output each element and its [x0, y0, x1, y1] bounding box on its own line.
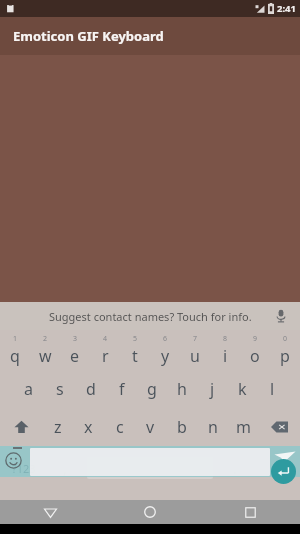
- staticText: e: [70, 345, 80, 367]
- staticText: v: [146, 416, 155, 438]
- staticText: 5: [133, 334, 138, 344]
- button[interactable]: z: [42, 408, 73, 446]
- staticText: 1: [13, 334, 18, 344]
- button[interactable]: Symbols: [0, 446, 48, 490]
- staticText: r: [102, 345, 109, 367]
- staticText: Suggest contact names? Touch for info.: [49, 309, 252, 324]
- button[interactable]: s: [44, 370, 75, 408]
- staticText: 2:41: [277, 2, 296, 15]
- button[interactable]: m: [228, 408, 259, 446]
- button[interactable]: Voice input: [270, 305, 292, 327]
- button[interactable]: 6: [150, 330, 180, 370]
- button[interactable]: n: [197, 408, 228, 446]
- staticText: p: [280, 345, 290, 367]
- button[interactable]: 7: [180, 330, 210, 370]
- button[interactable]: 3: [60, 330, 90, 370]
- staticText: 3: [73, 334, 78, 344]
- staticText: w: [39, 345, 52, 367]
- button[interactable]: Emoticon GIF Keyboard: [0, 17, 300, 55]
- staticText: j: [210, 378, 215, 400]
- staticText: z: [54, 416, 62, 438]
- staticText: l: [270, 378, 275, 400]
- button[interactable]: k: [227, 370, 257, 408]
- button[interactable]: x: [73, 408, 104, 446]
- staticText: x: [84, 416, 93, 438]
- staticText: y: [161, 345, 170, 367]
- button[interactable]: Backspace: [259, 408, 300, 446]
- staticText: m: [236, 416, 251, 438]
- staticText: .: [233, 459, 237, 478]
- button[interactable]: Enter: [271, 459, 296, 484]
- staticText: u: [190, 345, 200, 367]
- button[interactable]: Home: [100, 500, 200, 524]
- staticText: g: [147, 378, 157, 400]
- button[interactable]: g: [137, 370, 167, 408]
- staticText: o: [250, 345, 260, 367]
- staticText: ?123: [12, 461, 36, 476]
- staticText: 2: [43, 334, 48, 344]
- button[interactable]: 2: [30, 330, 60, 370]
- staticText: t: [132, 345, 138, 367]
- staticText: 0: [283, 334, 288, 344]
- button[interactable]: Back: [0, 500, 100, 524]
- button[interactable]: c: [104, 408, 135, 446]
- button[interactable]: 8: [210, 330, 240, 370]
- staticText: k: [238, 378, 247, 400]
- staticText: a: [24, 378, 33, 400]
- button[interactable]: d: [75, 370, 106, 408]
- button[interactable]: h: [167, 370, 197, 408]
- button[interactable]: v: [135, 408, 166, 446]
- button[interactable]: 5: [120, 330, 150, 370]
- button[interactable]: [251, 446, 300, 490]
- button[interactable]: 0: [270, 330, 300, 370]
- button[interactable]: j: [197, 370, 227, 408]
- button[interactable]: b: [166, 408, 197, 446]
- button[interactable]: Space: [81, 446, 218, 490]
- staticText: i: [223, 345, 228, 367]
- staticText: c: [116, 416, 124, 438]
- staticText: Emoticon GIF Keyboard: [13, 27, 164, 45]
- staticText: 7: [193, 334, 198, 344]
- button[interactable]: a: [13, 370, 44, 408]
- staticText: b: [177, 416, 187, 438]
- button[interactable]: ,: [48, 446, 81, 490]
- staticText: h: [177, 378, 187, 400]
- button[interactable]: Recent apps: [200, 500, 300, 524]
- button[interactable]: Shift: [0, 408, 42, 446]
- button[interactable]: 9: [240, 330, 270, 370]
- button[interactable]: l: [257, 370, 287, 408]
- button[interactable]: 1: [0, 330, 30, 370]
- staticText: 8: [223, 334, 228, 344]
- button[interactable]: .: [218, 446, 251, 490]
- button[interactable]: Suggest contact names? Touch for info.: [49, 302, 252, 330]
- button[interactable]: f: [106, 370, 137, 408]
- staticText: d: [86, 378, 96, 400]
- staticText: 6: [163, 334, 168, 344]
- staticText: f: [119, 378, 125, 400]
- button[interactable]: 4: [90, 330, 120, 370]
- staticText: n: [208, 416, 218, 438]
- staticText: ,: [63, 459, 67, 478]
- staticText: q: [10, 345, 20, 367]
- staticText: s: [56, 378, 64, 400]
- button[interactable]: Emoji: [5, 452, 22, 469]
- staticText: 9: [253, 334, 258, 344]
- staticText: 4: [103, 334, 108, 344]
